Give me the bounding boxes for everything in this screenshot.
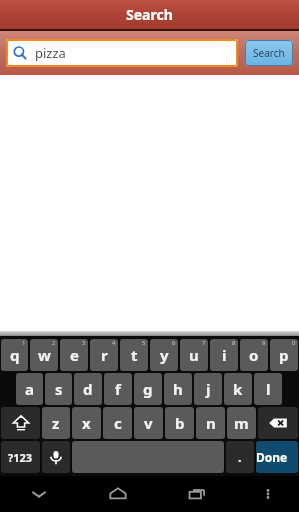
button[interactable]: i [210, 339, 238, 371]
button[interactable]: t [120, 339, 148, 371]
staticText: e [70, 345, 79, 365]
staticText: t [131, 345, 138, 365]
button[interactable]: y [150, 339, 178, 371]
staticText: . [238, 448, 242, 466]
button[interactable]: . [226, 441, 254, 473]
staticText: x [82, 413, 91, 433]
staticText: p [279, 345, 289, 365]
staticText: r [101, 345, 108, 365]
staticText: v [144, 413, 153, 433]
button[interactable]: a [16, 373, 43, 405]
staticText: 1 [22, 339, 26, 347]
staticText: Search [126, 5, 173, 24]
staticText: 9 [262, 339, 266, 347]
staticText: 3 [82, 339, 86, 347]
staticText: z [52, 413, 60, 433]
button[interactable]: Recent apps [157, 476, 236, 512]
staticText: q [10, 345, 20, 365]
button[interactable]: Shift [1, 407, 40, 439]
button[interactable]: w [30, 339, 58, 371]
button[interactable]: c [103, 407, 132, 439]
button[interactable]: z [42, 407, 70, 439]
staticText: Done [256, 449, 298, 465]
staticText: g [143, 379, 153, 399]
button[interactable]: l [254, 373, 282, 405]
staticText: i [222, 345, 227, 365]
staticText: h [173, 379, 183, 399]
button[interactable]: Hide keyboard [0, 476, 78, 512]
staticText: m [234, 413, 249, 433]
button[interactable]: j [194, 373, 222, 405]
staticText: d [83, 379, 93, 399]
button[interactable]: n [196, 407, 225, 439]
button[interactable]: d [74, 373, 102, 405]
button[interactable]: pizza [6, 39, 238, 67]
staticText: 8 [232, 339, 236, 347]
staticText: j [206, 379, 211, 399]
button[interactable]: g [134, 373, 162, 405]
button[interactable]: q [1, 339, 28, 371]
staticText: Search [253, 46, 285, 60]
button[interactable]: b [165, 407, 194, 439]
button[interactable]: Home [78, 476, 157, 512]
button[interactable]: x [72, 407, 101, 439]
button[interactable]: k [224, 373, 252, 405]
button[interactable]: h [164, 373, 192, 405]
staticText: f [115, 379, 121, 399]
staticText: c [114, 413, 122, 433]
staticText: a [25, 379, 34, 399]
button[interactable]: Done [256, 441, 298, 473]
staticText: b [175, 413, 185, 433]
button[interactable]: o [240, 339, 268, 371]
staticText: 2 [52, 339, 56, 347]
button[interactable]: u [180, 339, 208, 371]
button[interactable]: m [227, 407, 256, 439]
button[interactable]: p [270, 339, 298, 371]
staticText: 7 [202, 339, 206, 347]
button[interactable]: v [134, 407, 163, 439]
button[interactable]: ?123 [1, 441, 40, 473]
staticText: 4 [112, 339, 116, 347]
staticText: pizza [35, 44, 66, 62]
button[interactable]: Search [245, 40, 293, 66]
staticText: u [189, 345, 199, 365]
staticText: y [160, 345, 169, 365]
button[interactable]: More options [236, 476, 299, 512]
staticText: 5 [142, 339, 146, 347]
button[interactable]: r [90, 339, 118, 371]
button[interactable]: e [60, 339, 88, 371]
staticText: n [206, 413, 216, 433]
button[interactable]: s [45, 373, 72, 405]
staticText: s [55, 379, 63, 399]
staticText: o [249, 345, 259, 365]
button[interactable]: Voice input [42, 441, 70, 473]
staticText: 6 [172, 339, 176, 347]
staticText: w [38, 345, 51, 365]
staticText: ?123 [8, 450, 33, 465]
staticText: l [266, 379, 271, 399]
staticText: 0 [292, 339, 296, 347]
staticText: k [233, 379, 243, 399]
button[interactable]: Backspace [258, 407, 298, 439]
button[interactable]: f [104, 373, 132, 405]
